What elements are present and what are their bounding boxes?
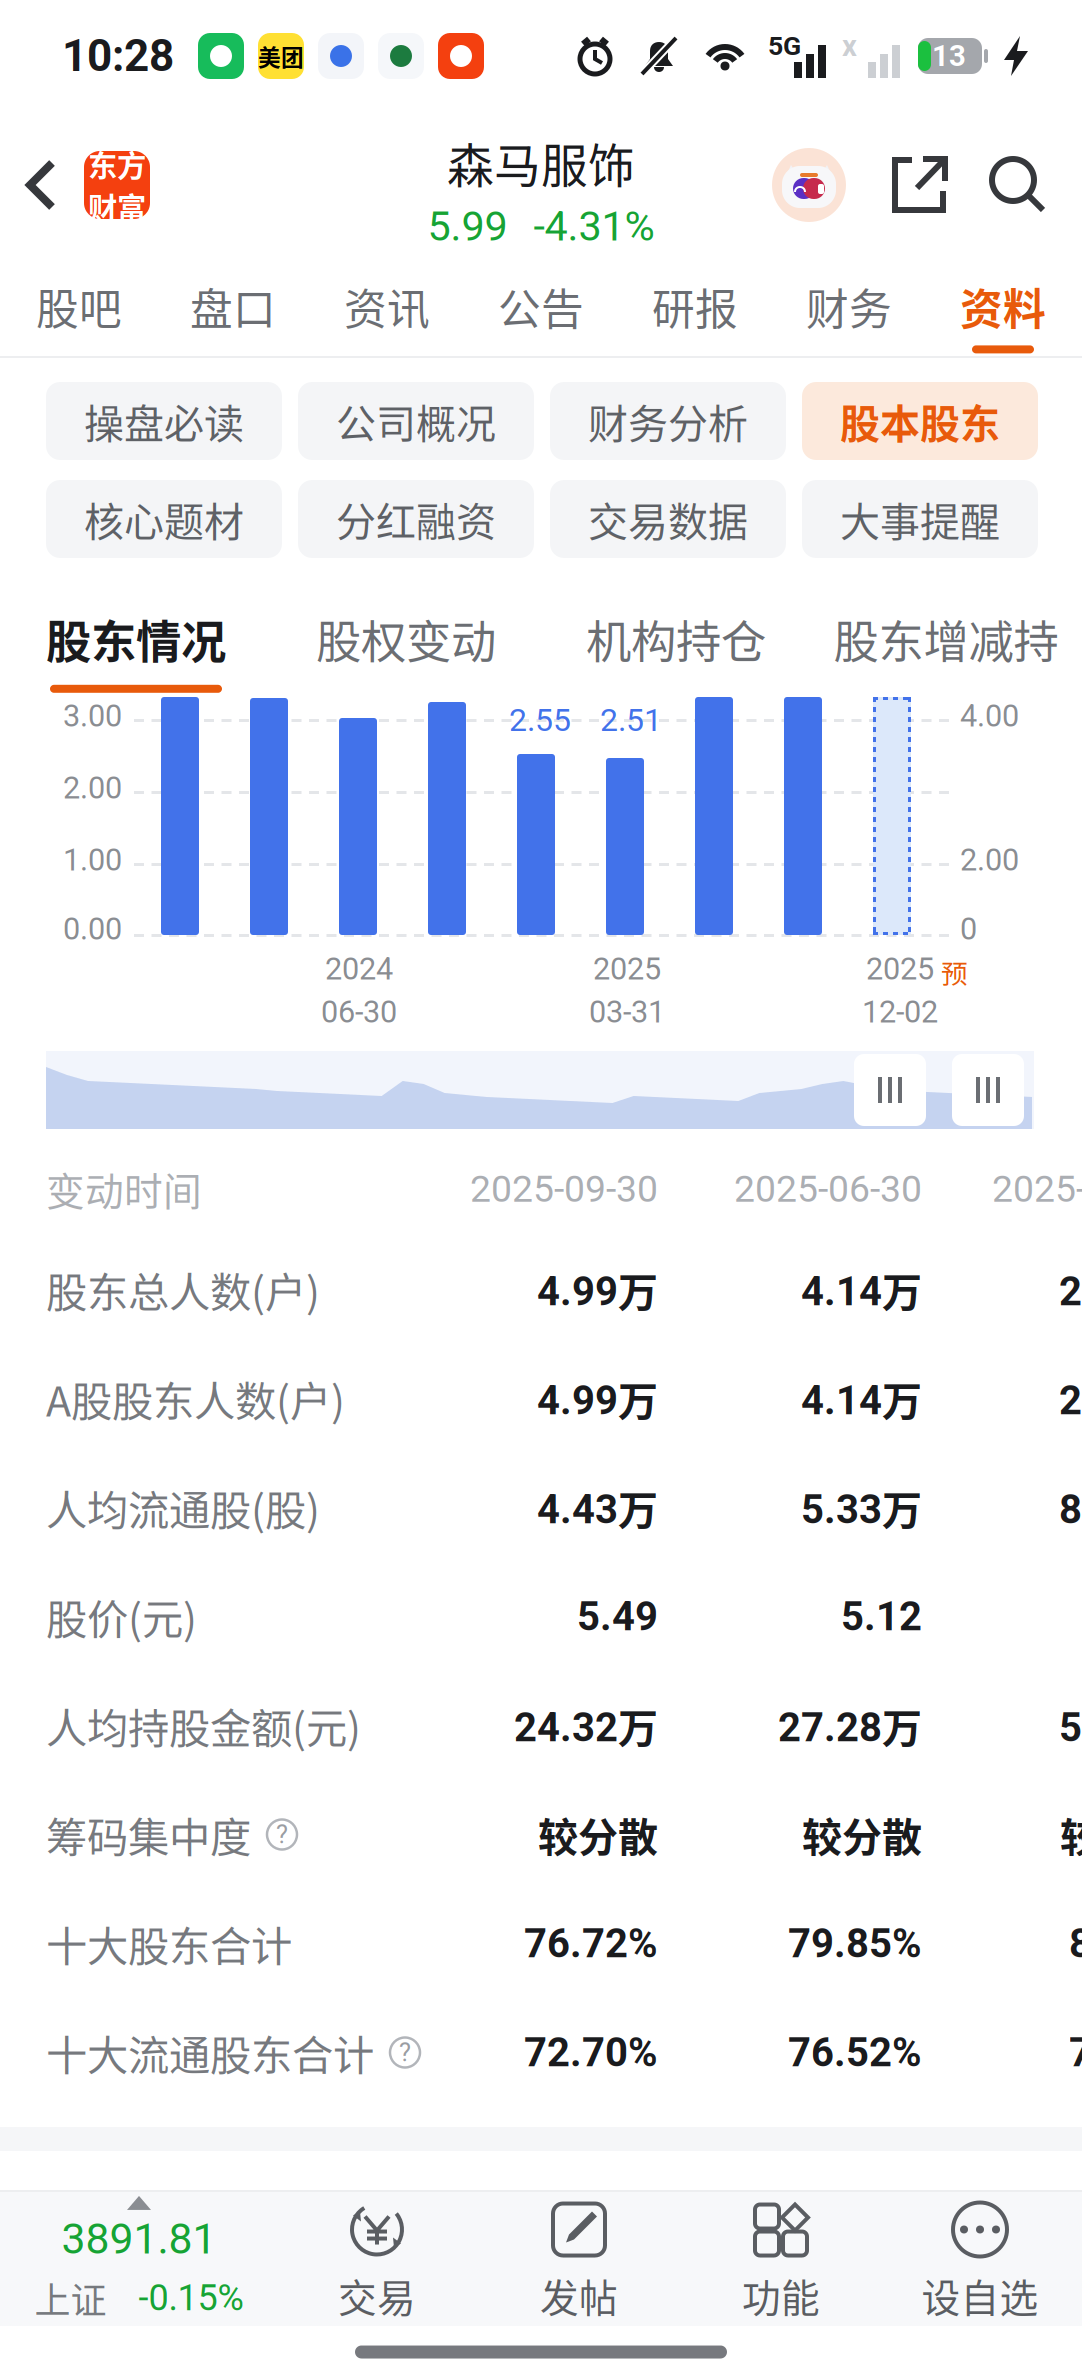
- staticText: 发帖: [540, 2267, 618, 2323]
- staticText: 设自选: [921, 2267, 1038, 2323]
- button[interactable]: 东方财富: [84, 151, 150, 219]
- staticText: 5.33万: [801, 1478, 922, 1536]
- staticText: 较分散: [538, 1805, 658, 1863]
- button[interactable]: 资讯: [310, 258, 464, 356]
- staticText: 股东增减持: [833, 606, 1058, 672]
- staticText: 公司概况: [336, 392, 496, 450]
- staticText: 财富: [88, 185, 146, 227]
- button[interactable]: 财务分析: [550, 382, 786, 460]
- staticText: 0: [960, 911, 977, 947]
- staticText: 股吧: [36, 276, 122, 337]
- button[interactable]: 3891.81: [403, 2192, 679, 2326]
- staticText: 股东总人数(户): [46, 1260, 320, 1319]
- button[interactable]: 资料: [926, 258, 1080, 356]
- staticText: ?: [276, 1820, 288, 1849]
- button[interactable]: 功能: [456, 2192, 626, 2326]
- staticText: 资讯: [344, 276, 430, 337]
- staticText: 52.1万: [1059, 1696, 1082, 1754]
- staticText: x: [842, 29, 857, 63]
- button[interactable]: 交易: [456, 2192, 626, 2326]
- button[interactable]: 盘口: [156, 258, 310, 356]
- staticText: 2025: [866, 951, 934, 987]
- staticText: 盘口: [190, 276, 276, 337]
- staticText: 10:28: [62, 30, 174, 82]
- staticText: 2.00: [960, 842, 1019, 878]
- staticText: 5G: [768, 30, 801, 62]
- staticText: 2025-06-30: [734, 1167, 922, 1211]
- staticText: 股价(元): [46, 1587, 197, 1646]
- staticText: 4.43万: [537, 1478, 658, 1536]
- button[interactable]: 核心题材: [46, 480, 282, 558]
- button[interactable]: 返回: [0, 112, 84, 258]
- staticText: 东方: [88, 142, 146, 185]
- staticText: 2.55: [509, 701, 571, 739]
- staticText: 2025: [593, 951, 661, 987]
- staticText: 交易: [338, 2267, 416, 2323]
- button[interactable]: 公告: [464, 258, 618, 356]
- staticText: 机构持仓: [586, 606, 766, 672]
- button[interactable]: 财务: [772, 258, 926, 356]
- staticText: 0.00: [63, 911, 122, 947]
- button[interactable]: 发帖: [456, 2192, 626, 2326]
- button[interactable]: 股东情况: [1, 580, 271, 697]
- staticText: 十大股东合计: [46, 1914, 292, 1973]
- staticText: 研报: [652, 276, 738, 337]
- staticText: 公告: [498, 276, 584, 337]
- staticText: 1.00: [63, 842, 122, 878]
- staticText: 变动时间: [46, 1161, 202, 1217]
- staticText: 功能: [742, 2267, 820, 2323]
- staticText: 分红融资: [336, 490, 496, 548]
- staticText: 4.00: [960, 698, 1019, 734]
- staticText: 上证: [34, 2272, 106, 2324]
- staticText: 4.99万: [537, 1260, 658, 1318]
- staticText: 72.70%: [524, 2029, 658, 2076]
- staticText: 12-02: [862, 994, 938, 1030]
- staticText: 13: [932, 39, 966, 73]
- staticText: 预: [941, 953, 968, 991]
- staticText: 4.14万: [801, 1369, 922, 1427]
- staticText: 2.51: [600, 701, 662, 739]
- staticText: 森马服饰: [447, 128, 635, 196]
- staticText: 77.1%: [1069, 2029, 1082, 2076]
- button[interactable]: 股本股东: [802, 382, 1038, 460]
- button[interactable]: 研报: [618, 258, 772, 356]
- staticText: -4.31%: [533, 202, 654, 250]
- button[interactable]: 机构持仓: [541, 580, 811, 697]
- staticText: 交易数据: [588, 490, 748, 548]
- staticText: 十大流通股东合计: [46, 2023, 374, 2082]
- button[interactable]: 股吧: [2, 258, 156, 356]
- staticText: 06-30: [321, 994, 397, 1030]
- staticText: 76.52%: [788, 2029, 922, 2076]
- staticText: 3.00: [63, 698, 122, 734]
- button[interactable]: 分享: [884, 149, 956, 221]
- staticText: 03-31: [589, 994, 665, 1030]
- button[interactable]: 公司概况: [298, 382, 534, 460]
- staticText: 较分散: [802, 1805, 922, 1863]
- staticText: 股权变动: [316, 606, 496, 672]
- staticText: 79.85%: [788, 1920, 922, 1967]
- button[interactable]: 交易数据: [550, 480, 786, 558]
- staticText: 2025-03-31: [992, 1167, 1082, 1211]
- button[interactable]: AI助手: [772, 148, 846, 222]
- button[interactable]: 股东增减持: [811, 580, 1081, 697]
- button[interactable]: 分红融资: [298, 480, 534, 558]
- button[interactable]: 搜索: [982, 149, 1054, 221]
- button[interactable]: 大事提醒: [802, 480, 1038, 558]
- staticText: 8.11万: [1059, 1478, 1082, 1536]
- staticText: 核心题材: [84, 490, 244, 548]
- button[interactable]: 操盘必读: [46, 382, 282, 460]
- staticText: 资料: [960, 276, 1046, 337]
- staticText: 4.14万: [801, 1260, 922, 1318]
- staticText: -0.15%: [138, 2277, 243, 2319]
- staticText: 2.73万: [1059, 1260, 1082, 1318]
- staticText: 80.1%: [1069, 1920, 1082, 1967]
- button[interactable]: 设自选: [456, 2192, 626, 2326]
- staticText: 2.00: [63, 770, 122, 806]
- staticText: 筹码集中度: [46, 1805, 251, 1864]
- staticText: A股股东人数(户): [46, 1369, 345, 1428]
- staticText: 24.32万: [514, 1696, 658, 1754]
- button[interactable]: 股权变动: [271, 580, 541, 697]
- staticText: 操盘必读: [84, 392, 244, 450]
- staticText: 4.99万: [537, 1369, 658, 1427]
- staticText: 5.99: [427, 202, 507, 250]
